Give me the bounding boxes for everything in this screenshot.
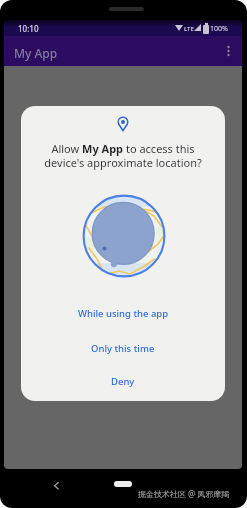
staticText: 10:10 <box>18 23 39 34</box>
button[interactable] <box>224 43 233 59</box>
button[interactable]: Only this time <box>21 338 225 358</box>
staticText: While using the app <box>78 307 169 320</box>
staticText: 掘金技术社区 @ 凤邪摩羯 <box>138 488 230 499</box>
staticText: My App <box>14 45 58 61</box>
staticText: Allow My App to access this device's app… <box>44 141 202 171</box>
staticText: Only this time <box>91 342 155 355</box>
staticText: LTE <box>184 25 194 33</box>
staticText: Deny <box>111 375 135 388</box>
button[interactable] <box>114 481 132 487</box>
staticText: 100% <box>210 24 228 34</box>
button[interactable]: Deny <box>21 371 225 391</box>
button[interactable] <box>50 480 62 492</box>
button[interactable]: While using the app <box>21 303 225 323</box>
